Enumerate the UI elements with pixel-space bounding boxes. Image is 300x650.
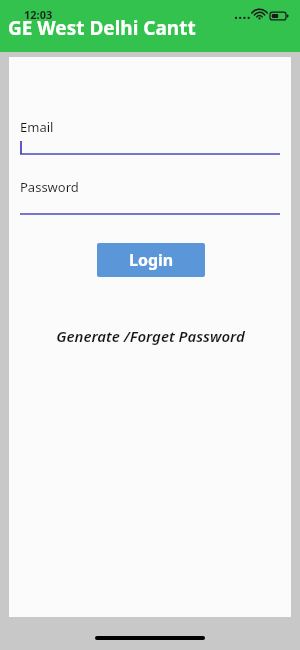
staticText: Password [20,178,79,196]
button[interactable] [20,199,280,215]
button[interactable] [20,139,280,155]
button[interactable]: Login [97,243,205,277]
staticText: GE West Delhi Cantt [8,15,196,41]
staticText: 12:03 [24,7,53,22]
button[interactable]: Generate /Forget Password [9,323,291,349]
staticText: Login [129,249,174,271]
staticText: Generate /Forget Password [56,326,245,346]
staticText: Email [20,118,54,136]
